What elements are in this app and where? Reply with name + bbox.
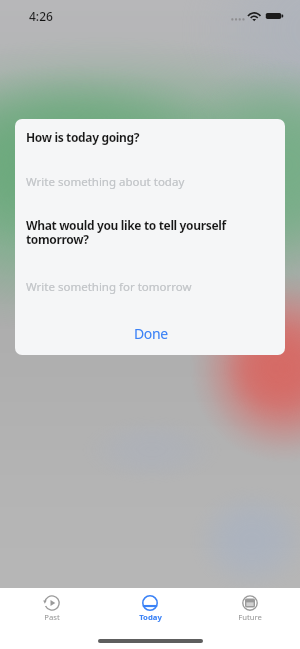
staticText: Today: [139, 612, 162, 622]
staticText: 4:26: [29, 8, 53, 24]
button[interactable]: Today: [118, 588, 182, 649]
other: Today: [141, 594, 159, 612]
other: Future: [241, 594, 259, 612]
staticText: Write something about today: [26, 174, 185, 190]
staticText: Done: [134, 324, 168, 343]
button[interactable]: Done: [120, 318, 182, 349]
staticText: How is today going?: [26, 129, 140, 145]
staticText: Future: [238, 612, 262, 622]
staticText: Past: [44, 612, 60, 622]
staticText: What would you like to tell yourself tom…: [26, 217, 242, 248]
staticText: Write something for tomorrow: [26, 279, 192, 295]
button[interactable]: Past: [20, 588, 84, 649]
other: Past: [43, 594, 61, 612]
button[interactable]: Future: [218, 588, 282, 649]
